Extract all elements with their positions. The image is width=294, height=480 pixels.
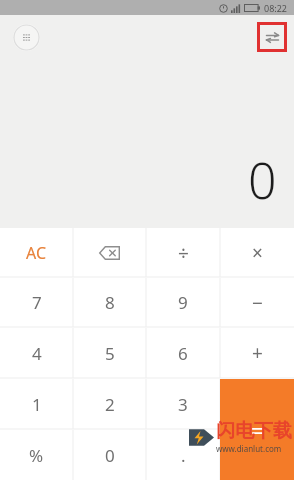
staticText: 0	[248, 146, 277, 214]
button[interactable]: 4	[0, 328, 73, 378]
button[interactable]: −	[220, 278, 294, 327]
staticText: www.dianlut.com	[216, 443, 282, 454]
staticText: +	[252, 340, 263, 366]
button[interactable]: 5	[73, 328, 146, 378]
button[interactable]: AC	[0, 228, 73, 277]
button[interactable]: 6	[146, 328, 220, 378]
staticText: 9	[178, 291, 188, 314]
button[interactable]: Apps	[13, 24, 40, 51]
staticText: %	[29, 444, 44, 467]
staticText: 08:22	[264, 2, 288, 14]
button[interactable]: +	[220, 328, 294, 378]
staticText: AC	[26, 242, 47, 264]
button[interactable]: Equals	[220, 379, 294, 480]
button[interactable]: 2	[73, 379, 146, 429]
button[interactable]: %	[0, 430, 73, 480]
staticText: 1	[32, 393, 42, 416]
button[interactable]: Swap units	[257, 22, 287, 52]
staticText: 4	[32, 342, 42, 365]
button[interactable]: 7	[0, 278, 73, 327]
button[interactable]: ×	[220, 228, 294, 277]
button[interactable]: 9	[146, 278, 220, 327]
button[interactable]: 0	[73, 430, 146, 480]
staticText: 3	[178, 393, 188, 416]
staticText: 5	[105, 342, 115, 365]
button[interactable]: 3	[146, 379, 220, 429]
button[interactable]: 8	[73, 278, 146, 327]
staticText: 0	[105, 444, 115, 467]
staticText: 7	[32, 291, 42, 314]
staticText: 6	[178, 342, 188, 365]
staticText: ×	[252, 240, 263, 266]
staticText: 2	[105, 393, 115, 416]
staticText: .	[181, 444, 186, 467]
staticText: =	[251, 415, 264, 445]
staticText: ÷	[178, 240, 189, 266]
staticText: 闪电下载	[216, 419, 292, 443]
button[interactable]: Backspace	[73, 228, 146, 277]
staticText: −	[252, 290, 263, 316]
staticText: 8	[105, 291, 115, 314]
button[interactable]: 1	[0, 379, 73, 429]
button[interactable]: ÷	[146, 228, 220, 277]
button[interactable]: .	[146, 430, 220, 480]
